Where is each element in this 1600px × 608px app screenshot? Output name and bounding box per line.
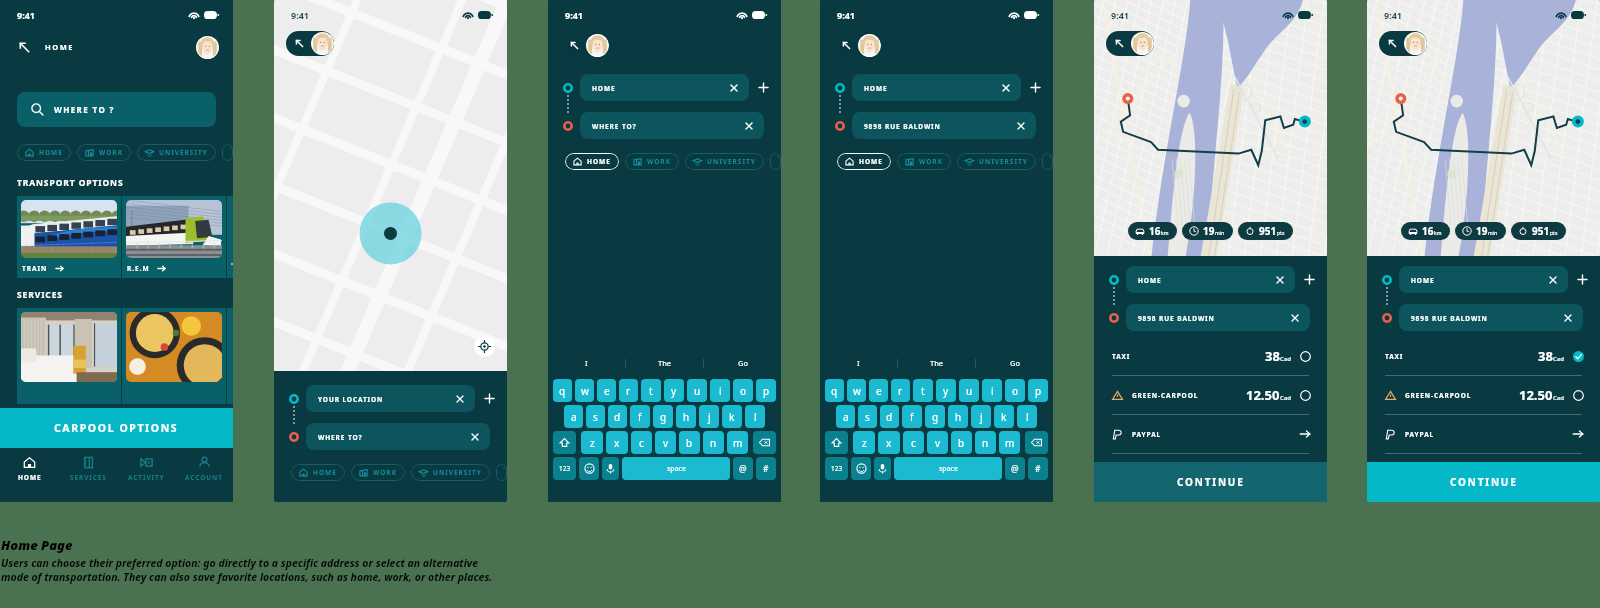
button[interactable]: 16: [1128, 222, 1177, 240]
button[interactable]: Back and profile: [1106, 31, 1154, 56]
button[interactable]: [122, 308, 226, 404]
button[interactable]: g: [925, 405, 945, 428]
button[interactable]: UNIVERSITY: [411, 464, 490, 481]
button[interactable]: e: [597, 379, 616, 402]
button[interactable]: Add stop: [1576, 273, 1589, 286]
button[interactable]: u: [959, 379, 979, 402]
button[interactable]: HOME: [852, 74, 1021, 101]
button[interactable]: x: [878, 431, 900, 454]
button[interactable]: I: [548, 354, 625, 372]
button[interactable]: CARPOOL OPTIONS: [0, 408, 233, 448]
button[interactable]: Voice: [874, 457, 891, 480]
button[interactable]: TAXI: [1094, 337, 1327, 375]
button[interactable]: My location: [474, 336, 495, 357]
button[interactable]: b: [679, 431, 700, 454]
button[interactable]: R.E.M: [122, 196, 226, 278]
button[interactable]: h: [676, 405, 696, 428]
button[interactable]: space: [622, 457, 730, 480]
button[interactable]: Back and profile: [286, 31, 334, 56]
button[interactable]: Profile: [311, 32, 334, 55]
button[interactable]: 19: [1455, 222, 1506, 240]
button[interactable]: Go: [704, 354, 781, 372]
button[interactable]: Profile: [858, 34, 881, 57]
button[interactable]: Go: [976, 354, 1053, 372]
button[interactable]: d: [608, 405, 627, 428]
button[interactable]: a: [836, 405, 855, 428]
button[interactable]: 9898 RUE BALDWIN: [1126, 304, 1310, 331]
button[interactable]: s: [586, 405, 605, 428]
button[interactable]: UNIVERSITY: [137, 144, 216, 161]
button[interactable]: I: [820, 354, 897, 372]
button[interactable]: m: [999, 431, 1020, 454]
button[interactable]: d: [880, 405, 899, 428]
button[interactable]: i: [710, 379, 730, 402]
button[interactable]: Shift: [553, 431, 576, 454]
button[interactable]: [1042, 153, 1053, 170]
button[interactable]: Back: [17, 40, 32, 55]
button[interactable]: HOME: [565, 153, 619, 170]
button[interactable]: TRAIN: [17, 196, 121, 278]
button[interactable]: HOME: [0, 448, 59, 490]
button[interactable]: r: [891, 379, 910, 402]
button[interactable]: 951: [1238, 222, 1293, 240]
button[interactable]: WORK: [897, 153, 951, 170]
button[interactable]: HOME: [580, 74, 749, 101]
button[interactable]: space: [894, 457, 1002, 480]
button[interactable]: z: [853, 431, 875, 454]
button[interactable]: t: [913, 379, 933, 402]
button[interactable]: Add stop: [483, 392, 496, 405]
button[interactable]: g: [653, 405, 673, 428]
button[interactable]: Profile: [1131, 32, 1154, 55]
button[interactable]: 9898 RUE BALDWIN: [1399, 304, 1583, 331]
button[interactable]: WHERE TO ?: [17, 92, 216, 127]
button[interactable]: Profile: [196, 36, 219, 59]
button[interactable]: #: [756, 457, 776, 480]
button[interactable]: SERVICES: [59, 448, 117, 490]
button[interactable]: Back and profile: [1379, 31, 1427, 56]
button[interactable]: Backspace: [1025, 431, 1048, 454]
button[interactable]: Shift: [825, 431, 848, 454]
button[interactable]: z: [581, 431, 603, 454]
button[interactable]: [496, 464, 507, 481]
button[interactable]: Backspace: [753, 431, 776, 454]
button[interactable]: [222, 144, 233, 161]
button[interactable]: m: [727, 431, 748, 454]
button[interactable]: j: [971, 405, 991, 428]
button[interactable]: [17, 308, 121, 404]
button[interactable]: b: [951, 431, 972, 454]
button[interactable]: 16: [1401, 222, 1450, 240]
button[interactable]: j: [699, 405, 719, 428]
button[interactable]: UNIVERSITY: [957, 153, 1036, 170]
button[interactable]: ACTIVITY: [117, 448, 175, 490]
button[interactable]: Profile: [586, 34, 609, 57]
button[interactable]: 9898 RUE BALDWIN: [852, 112, 1036, 139]
button[interactable]: HOME: [291, 464, 345, 481]
button[interactable]: q: [553, 379, 572, 402]
button[interactable]: n: [975, 431, 996, 454]
button[interactable]: r: [619, 379, 638, 402]
button[interactable]: f: [630, 405, 650, 428]
button[interactable]: Add stop: [1303, 273, 1316, 286]
button[interactable]: HOME: [1399, 266, 1568, 293]
button[interactable]: 19: [1182, 222, 1233, 240]
button[interactable]: p: [1028, 379, 1048, 402]
button[interactable]: y: [664, 379, 684, 402]
button[interactable]: y: [936, 379, 956, 402]
button[interactable]: Back and profile: [833, 33, 881, 58]
button[interactable]: c: [631, 431, 652, 454]
button[interactable]: PAYPAL: [1367, 415, 1600, 453]
button[interactable]: WHERE TO?: [306, 423, 490, 450]
button[interactable]: i: [982, 379, 1002, 402]
button[interactable]: Voice: [602, 457, 619, 480]
button[interactable]: Add stop: [1029, 81, 1042, 94]
button[interactable]: h: [948, 405, 968, 428]
button[interactable]: GREEN-CARPOOL: [1367, 376, 1600, 414]
button[interactable]: @: [1005, 457, 1025, 480]
button[interactable]: @: [733, 457, 753, 480]
button[interactable]: WORK: [625, 153, 679, 170]
button[interactable]: l: [745, 405, 765, 428]
button[interactable]: ACCOUNT: [175, 448, 233, 490]
button[interactable]: Emoji: [851, 457, 871, 480]
button[interactable]: v: [655, 431, 676, 454]
